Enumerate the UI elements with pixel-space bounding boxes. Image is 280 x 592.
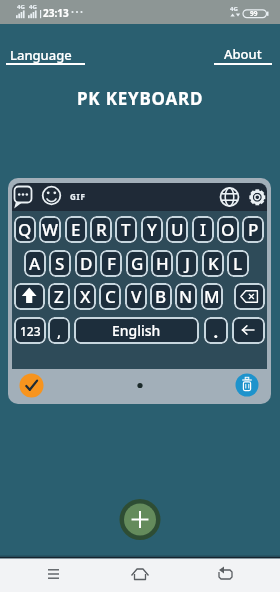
staticText: , bbox=[57, 321, 62, 341]
staticText: 23:13 bbox=[43, 6, 69, 20]
staticText: G bbox=[131, 252, 144, 275]
staticText: L bbox=[233, 252, 243, 275]
staticText: E bbox=[71, 218, 81, 241]
staticText: D bbox=[80, 252, 93, 275]
staticText: H bbox=[156, 252, 169, 275]
staticText: About bbox=[224, 45, 262, 63]
staticText: V bbox=[131, 285, 142, 308]
staticText: GIF bbox=[70, 191, 86, 202]
staticText: F bbox=[107, 252, 116, 275]
staticText: Z bbox=[54, 285, 64, 308]
staticText: X bbox=[80, 285, 91, 308]
staticText: 4G bbox=[29, 3, 37, 11]
staticText: K bbox=[208, 252, 219, 275]
staticText: 4G bbox=[17, 3, 25, 11]
staticText: R bbox=[96, 218, 107, 241]
staticText: M bbox=[204, 285, 220, 308]
staticText: 123 bbox=[20, 323, 41, 339]
staticText: T bbox=[121, 218, 131, 241]
staticText: Y bbox=[147, 218, 157, 241]
staticText: Language bbox=[10, 46, 72, 64]
staticText: A bbox=[29, 252, 41, 275]
staticText: I bbox=[200, 218, 207, 241]
staticText: N bbox=[179, 285, 193, 308]
staticText: 99 bbox=[250, 9, 258, 18]
staticText: C bbox=[105, 285, 116, 308]
staticText: S bbox=[55, 252, 65, 275]
staticText: 4G bbox=[230, 5, 238, 13]
staticText: P bbox=[248, 218, 259, 241]
staticText: J bbox=[185, 252, 190, 275]
staticText: PK KEYBOARD bbox=[77, 87, 204, 110]
staticText: O bbox=[221, 218, 235, 241]
staticText: W bbox=[42, 218, 58, 241]
staticText: B bbox=[155, 285, 167, 308]
staticText: Q bbox=[18, 218, 32, 241]
staticText: English bbox=[112, 321, 161, 340]
staticText: U bbox=[171, 218, 184, 241]
